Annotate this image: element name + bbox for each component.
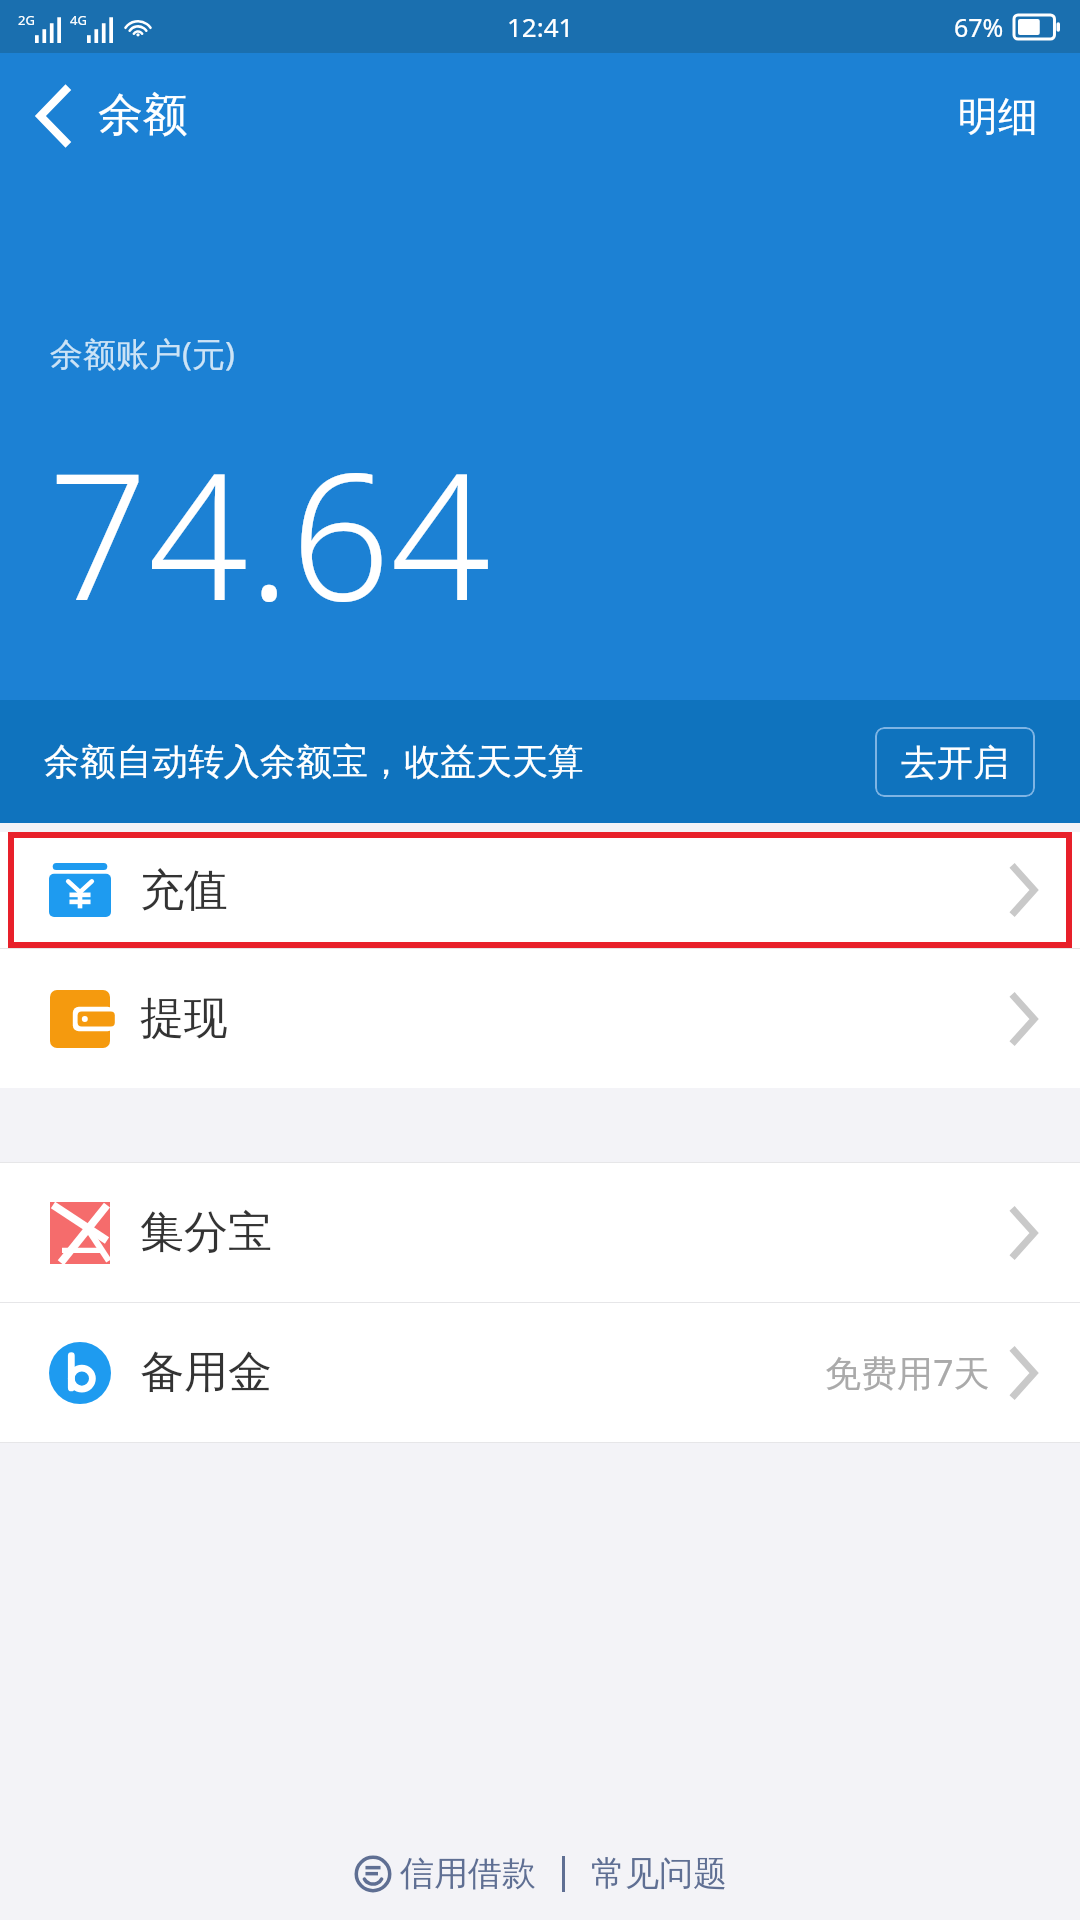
button[interactable]: 备用金 (0, 1303, 1080, 1442)
button[interactable]: 去开启 (875, 727, 1035, 797)
button[interactable]: 信用借款 (354, 1852, 536, 1895)
staticText: 余额自动转入余额宝，收益天天算 (44, 739, 584, 784)
button[interactable]: 提现 (0, 949, 1080, 1088)
staticText: 余额账户(元) (50, 331, 235, 376)
staticText: 免费用7天 (825, 1348, 990, 1397)
staticText: 备用金 (140, 1345, 272, 1400)
staticText: 74.64 (48, 413, 491, 651)
staticText: 去开启 (901, 740, 1009, 785)
staticText: 提现 (140, 991, 228, 1046)
button[interactable]: 集分宝 (0, 1163, 1080, 1302)
button[interactable]: 明细 (916, 53, 1080, 178)
staticText: 4G (70, 11, 87, 29)
staticText: 67% (954, 10, 1004, 44)
staticText: 明细 (958, 91, 1038, 141)
staticText: 集分宝 (140, 1205, 272, 1260)
staticText: 余额 (98, 87, 188, 144)
button[interactable]: 返回 (0, 53, 206, 178)
staticText: 2G (18, 11, 35, 29)
staticText: 充值 (140, 863, 228, 918)
button[interactable]: 常见问题 (591, 1852, 727, 1895)
staticText: 常见问题 (591, 1852, 727, 1895)
staticText: 信用借款 (400, 1852, 536, 1895)
staticText: 12:41 (507, 9, 574, 44)
button[interactable]: 充值 (0, 832, 1080, 948)
